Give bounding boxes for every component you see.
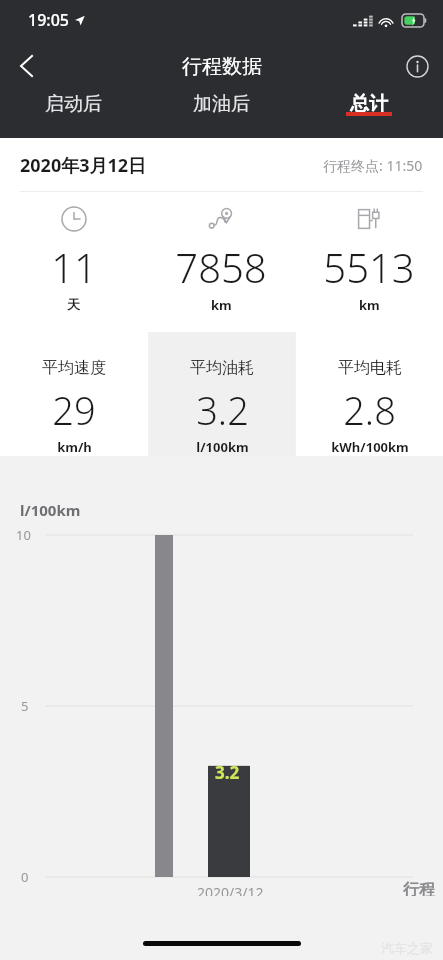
staticText: 总计	[350, 92, 388, 116]
staticText: km/h	[57, 438, 92, 456]
staticText: 2020/3/12	[197, 883, 264, 902]
button[interactable]: 11	[0, 192, 147, 312]
staticText: 启动后	[45, 92, 102, 116]
staticText: 平均电耗	[338, 358, 402, 378]
staticText: 3.2	[196, 384, 249, 436]
button[interactable]: 平均速度	[0, 332, 148, 456]
staticText: l/100km	[196, 438, 249, 456]
button[interactable]: 5513	[295, 192, 443, 314]
button[interactable]: 启动后	[0, 92, 147, 116]
staticText: 行程	[403, 880, 435, 900]
staticText: 平均速度	[42, 358, 106, 378]
staticText: 11	[51, 240, 97, 294]
button[interactable]: Info	[391, 40, 443, 92]
button[interactable]: 7858	[147, 192, 295, 314]
staticText: 29	[52, 384, 96, 436]
staticText: 行程终点: 11:50	[323, 156, 423, 175]
button[interactable]: 加油后	[147, 92, 295, 116]
staticText: km	[359, 296, 380, 314]
staticText: 加油后	[193, 92, 250, 116]
staticText: 天	[67, 296, 80, 312]
staticText: 3.2	[215, 761, 240, 784]
staticText: 行程数据	[182, 54, 262, 79]
button[interactable]: 平均油耗	[149, 332, 295, 456]
staticText: 10	[16, 526, 31, 544]
staticText: 19:05	[28, 9, 69, 31]
staticText: 5	[21, 697, 29, 715]
staticText: 汽车之家	[381, 940, 433, 956]
button[interactable]: Back	[0, 40, 52, 92]
staticText: 5513	[323, 240, 415, 294]
staticText: 0	[21, 868, 29, 886]
staticText: km	[211, 296, 232, 314]
staticText: l/100km	[20, 500, 81, 520]
button[interactable]: 总计	[295, 92, 443, 116]
button[interactable]: 平均电耗	[296, 332, 443, 456]
staticText: 2.8	[343, 384, 396, 436]
staticText: kWh/100km	[331, 438, 409, 456]
staticText: 7858	[175, 240, 267, 294]
staticText: 2020年3月12日	[20, 153, 147, 178]
staticText: 平均油耗	[190, 358, 254, 378]
